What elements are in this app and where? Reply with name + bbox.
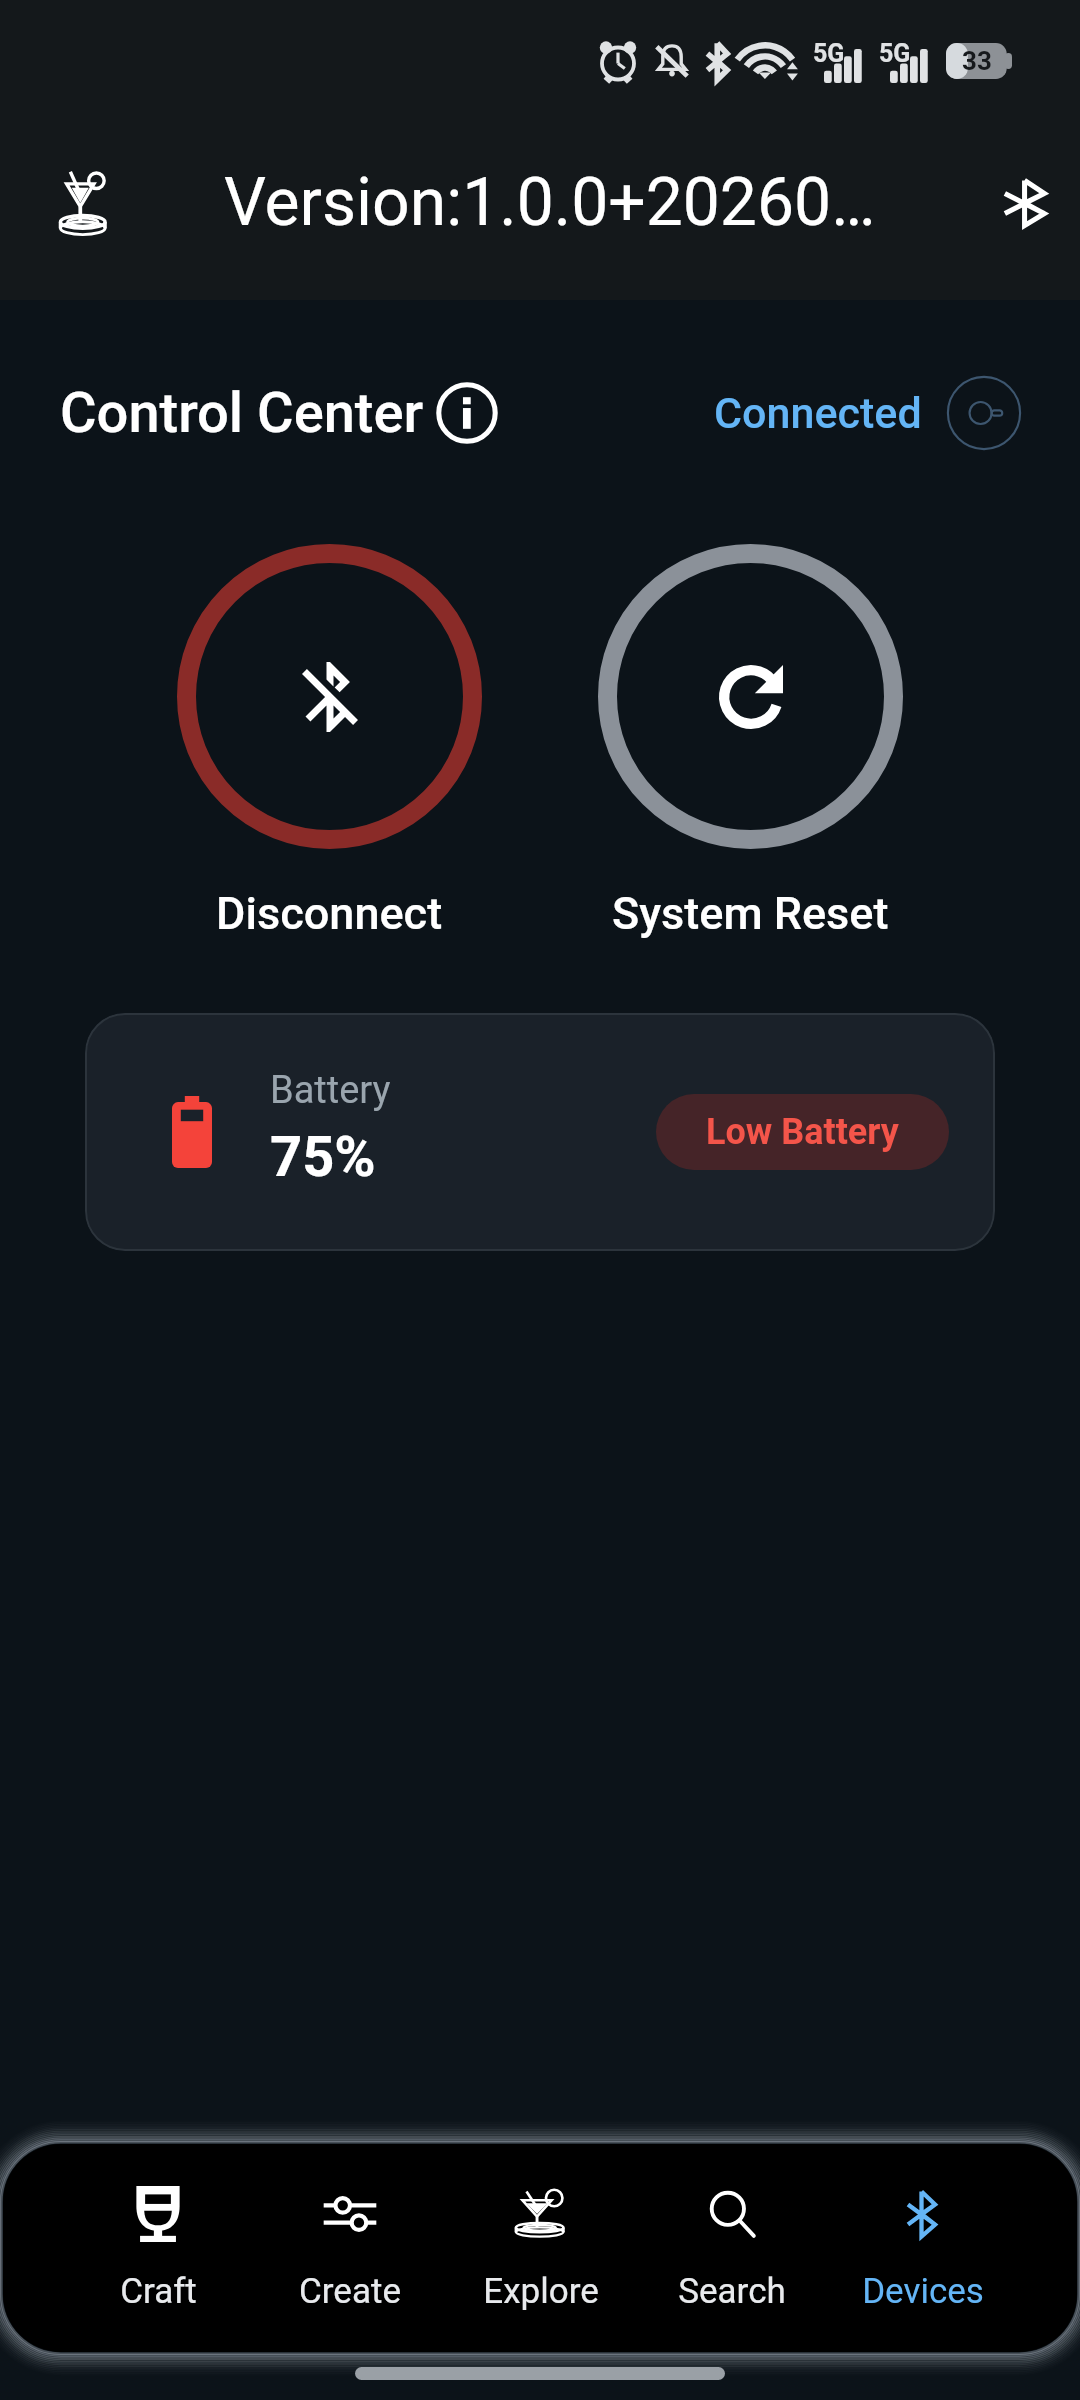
button[interactable]: Info: [436, 382, 498, 444]
staticText: Control Center: [60, 380, 424, 446]
staticText: Connected: [714, 388, 922, 438]
button[interactable]: Bluetooth: [1002, 179, 1050, 227]
staticText: Create: [299, 2271, 401, 2312]
button[interactable]: Disconnect bluetooth: [177, 544, 482, 940]
other: Disconnect bluetooth: [177, 544, 482, 849]
staticText: Battery: [270, 1068, 391, 1113]
staticText: Devices: [862, 2271, 984, 2312]
staticText: Explore: [483, 2271, 599, 2312]
other: System reset: [598, 544, 903, 849]
staticText: Low Battery: [706, 1111, 899, 1153]
button[interactable]: Low Battery: [656, 1094, 949, 1170]
staticText: 5G: [813, 39, 845, 68]
staticText: 33: [962, 46, 992, 76]
staticText: System Reset: [612, 887, 889, 940]
staticText: 75%: [270, 1124, 376, 1190]
button[interactable]: Craft: [62, 2179, 254, 2318]
button[interactable]: Device status: [946, 375, 1022, 451]
staticText: Craft: [120, 2271, 197, 2312]
staticText: Search: [678, 2271, 786, 2312]
button[interactable]: Explore: [445, 2179, 636, 2318]
button[interactable]: Devices: [827, 2179, 1018, 2318]
button[interactable]: Battery: [85, 1013, 995, 1251]
button[interactable]: Search: [636, 2179, 827, 2318]
staticText: Version:1.0.0+20260…: [224, 164, 876, 241]
other: App logo: [53, 164, 115, 242]
staticText: 5G: [879, 39, 911, 68]
button[interactable]: Create: [254, 2179, 445, 2318]
button[interactable]: System reset: [598, 544, 903, 940]
staticText: Disconnect: [216, 887, 443, 940]
